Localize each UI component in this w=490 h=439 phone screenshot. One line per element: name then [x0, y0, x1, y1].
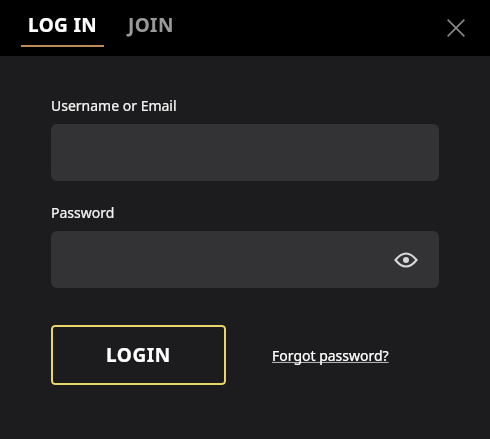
button[interactable]: JOIN — [128, 12, 174, 38]
button[interactable]: Show password — [393, 247, 419, 273]
button[interactable]: LOG IN — [21, 12, 104, 47]
staticText: JOIN — [128, 12, 174, 38]
staticText: Username or Email — [51, 96, 177, 115]
staticText: Forgot password? — [272, 346, 389, 365]
staticText: LOG IN — [28, 12, 98, 38]
staticText: Password — [51, 203, 115, 222]
button[interactable]: Show password — [51, 231, 439, 288]
button[interactable]: LOGIN — [51, 325, 226, 385]
button[interactable]: Close — [436, 8, 476, 48]
button[interactable]: Forgot password? — [272, 340, 389, 371]
staticText: LOGIN — [106, 342, 171, 368]
